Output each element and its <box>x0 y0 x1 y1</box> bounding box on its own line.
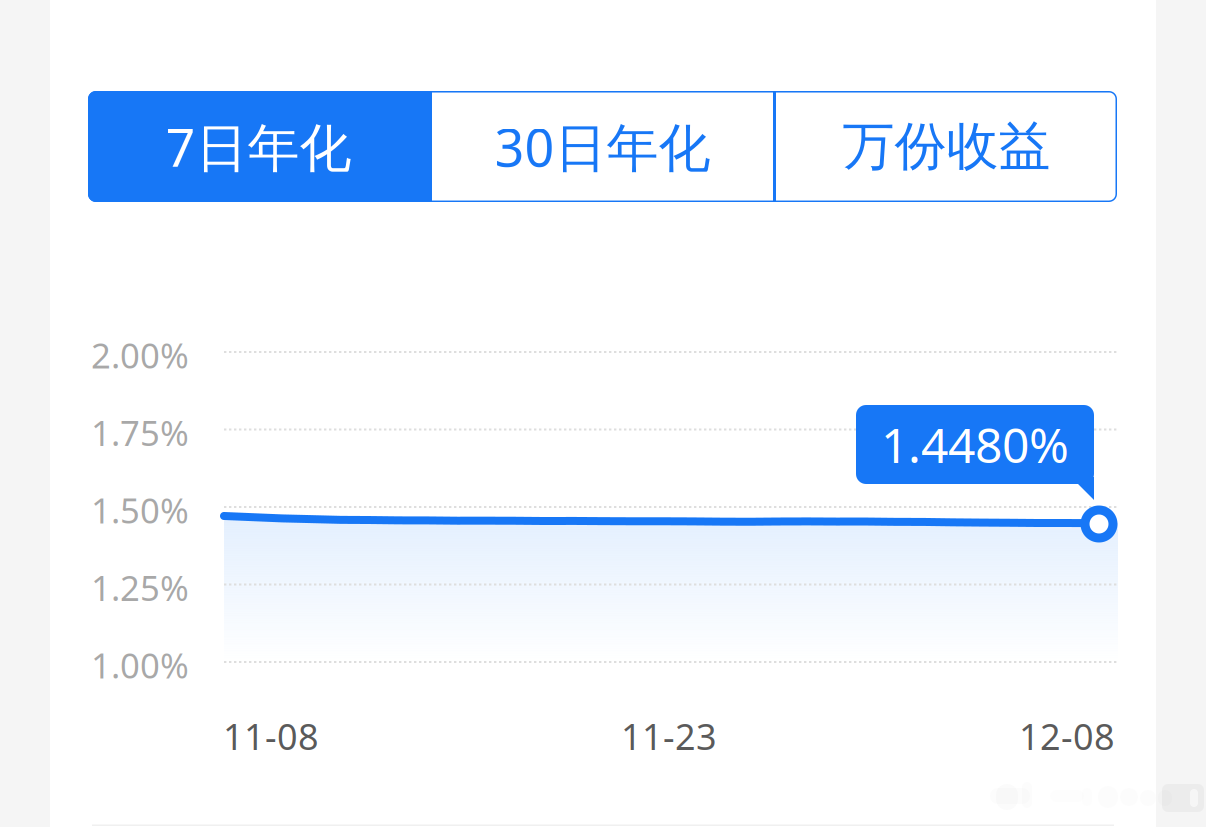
staticText: 11-08 <box>223 712 319 760</box>
staticText: 1.25% <box>91 564 189 610</box>
button[interactable]: 万份收益 <box>776 91 1117 202</box>
button[interactable]: 7日年化 <box>88 91 429 202</box>
staticText: 12-08 <box>1019 712 1115 760</box>
staticText: 1.75% <box>91 409 189 455</box>
staticText: 1.4480% <box>881 413 1069 476</box>
staticText: 1.50% <box>91 487 189 533</box>
staticText: 1.00% <box>91 642 189 688</box>
staticText: 万份收益 <box>842 115 1050 178</box>
button[interactable]: 30日年化 <box>432 91 773 202</box>
staticText: 11-23 <box>621 712 717 760</box>
staticText: 7日年化 <box>165 112 351 181</box>
staticText: 2.00% <box>91 332 189 378</box>
staticText: 30日年化 <box>494 112 710 181</box>
